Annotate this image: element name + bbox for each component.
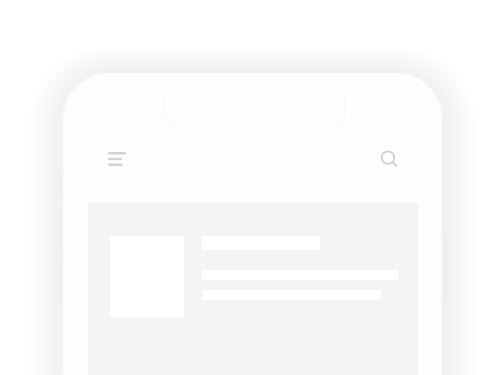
button[interactable] [110,236,398,317]
button[interactable]: Open navigation menu [102,144,132,174]
button[interactable]: Search [374,144,404,174]
